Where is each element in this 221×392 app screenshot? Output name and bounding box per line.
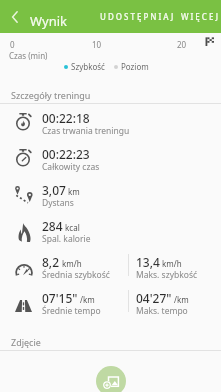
button[interactable]: 284 [0, 211, 221, 247]
button[interactable]: 07'15" [0, 283, 127, 319]
staticText: Szczegóły treningu [11, 89, 91, 101]
staticText: Szybkość [71, 61, 105, 72]
staticText: Dystans [42, 197, 74, 209]
staticText: 04'27" [136, 290, 172, 306]
staticText: WIĘCEJ [181, 11, 221, 22]
staticText: 20 [177, 39, 187, 50]
staticText: Czas trwania treningu [42, 125, 130, 137]
staticText: km/h [160, 258, 182, 269]
button[interactable]: 00:22:23 [0, 139, 221, 175]
staticText: kcal [63, 222, 80, 233]
staticText: km [66, 186, 80, 197]
button[interactable]: 3,07 [0, 175, 221, 211]
button[interactable]: 04'27" [131, 283, 221, 319]
staticText: Maks. szybkość [136, 269, 198, 281]
staticText: /km [172, 294, 189, 305]
staticText: Średnie tempo [42, 305, 101, 317]
staticText: 00:22:23 [42, 146, 90, 162]
staticText: UDOSTĘPNIAJ [100, 11, 176, 22]
button[interactable]: 00:22:18 [0, 103, 221, 139]
button[interactable]: WIĘCEJ [179, 4, 221, 29]
staticText: 00:22:18 [42, 110, 90, 126]
staticText: Poziom [121, 61, 149, 72]
staticText: Czas (min) [9, 50, 48, 61]
staticText: km/h [60, 258, 82, 269]
button[interactable]: Finish flag [205, 37, 214, 46]
staticText: 07'15" [42, 290, 78, 306]
button[interactable]: 13,4 [131, 247, 221, 283]
staticText: 284 [42, 218, 63, 234]
staticText: /km [78, 294, 95, 305]
staticText: Maks. tempo [136, 305, 188, 317]
staticText: Zdjęcie [11, 336, 41, 348]
staticText: Wynik [30, 12, 68, 30]
staticText: 13,4 [136, 254, 160, 270]
staticText: Średnia szybkość [42, 269, 110, 281]
staticText: Spal. kalorie [42, 233, 91, 245]
staticText: 8,2 [42, 254, 60, 270]
staticText: 10 [92, 39, 102, 50]
button[interactable]: UDOSTĘPNIAJ [97, 4, 179, 29]
staticText: 3,07 [42, 182, 66, 198]
button[interactable]: Add photo [96, 366, 126, 392]
button[interactable]: Back [4, 6, 26, 28]
staticText: Całkowity czas [42, 161, 100, 173]
staticText: 0 [10, 39, 15, 50]
button[interactable]: 8,2 [0, 247, 127, 283]
